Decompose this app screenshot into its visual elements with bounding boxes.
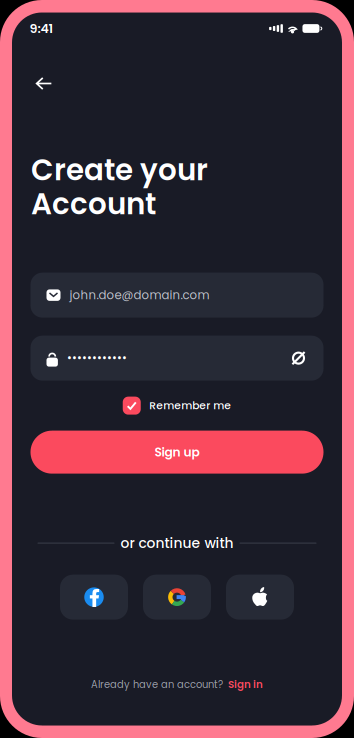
button[interactable]: Sign up (30, 431, 323, 474)
button[interactable]: Continue with Apple (226, 575, 294, 620)
button[interactable]: Remember me (123, 397, 231, 415)
button[interactable]: Continue with Facebook (60, 575, 128, 620)
staticText: Remember me (149, 398, 231, 413)
staticText: •••••••••••• (67, 350, 127, 366)
staticText: Already have an account? (91, 678, 223, 691)
button[interactable]: Continue with Google (143, 575, 211, 620)
staticText: or continue with (120, 533, 233, 553)
staticText: 9:41 (29, 20, 53, 37)
button[interactable]: Show password (287, 347, 309, 369)
button[interactable]: Back (27, 66, 61, 100)
staticText: john.doe@domain.com (69, 287, 209, 303)
button[interactable]: Already have an account? (91, 675, 263, 693)
staticText: Sign up (154, 443, 199, 461)
staticText: Create your Account (31, 149, 208, 225)
staticText: Sign in (228, 677, 263, 692)
